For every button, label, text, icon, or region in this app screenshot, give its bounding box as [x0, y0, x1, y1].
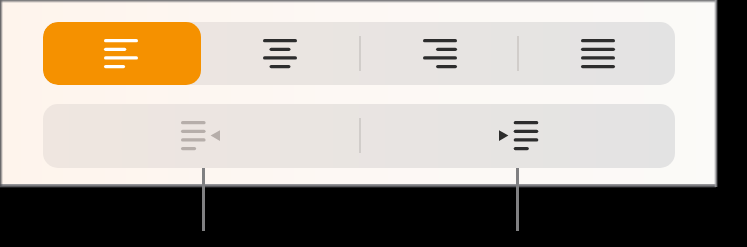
other: Align center: [263, 38, 297, 70]
button[interactable]: Align left: [43, 22, 201, 85]
button[interactable]: Decrease indent: [43, 104, 359, 168]
other: Increase indent: [499, 120, 539, 152]
button[interactable]: Increase indent: [359, 104, 675, 168]
button[interactable]: Justify: [517, 22, 675, 85]
button[interactable]: Align center: [201, 22, 359, 85]
button[interactable]: Align right: [359, 22, 517, 85]
other: Justify: [581, 38, 615, 70]
other: Align left: [104, 38, 138, 70]
other: Align right: [423, 38, 457, 70]
other: Decrease indent: [181, 120, 221, 152]
